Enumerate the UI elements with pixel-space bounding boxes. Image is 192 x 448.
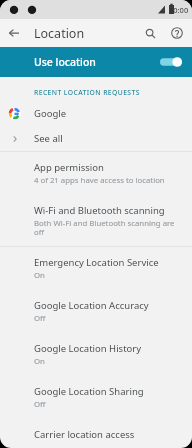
staticText: RECENT LOCATION REQUESTS xyxy=(34,88,140,97)
staticText: Emergency Location Service xyxy=(34,256,159,269)
button[interactable]: Carrier location access xyxy=(0,419,192,448)
staticText: Carrier location access xyxy=(34,428,135,439)
button[interactable]: Google Location History xyxy=(0,333,192,376)
button[interactable]: Wi-Fi and Bluetooth scanning xyxy=(0,195,192,246)
staticText: Location xyxy=(34,25,85,42)
button[interactable]: Google Location Sharing xyxy=(0,376,192,419)
button[interactable]: Search xyxy=(136,19,164,47)
staticText: Google Location History xyxy=(34,342,142,355)
button[interactable]: Google xyxy=(0,101,192,126)
button[interactable]: Back xyxy=(0,19,28,47)
staticText: Off xyxy=(34,399,46,410)
staticText: Wi-Fi and Bluetooth scanning xyxy=(34,204,165,217)
staticText: 10:00 xyxy=(169,5,189,15)
staticText: Both Wi-Fi and Bluetooth scanning are of… xyxy=(34,218,180,237)
staticText: 4 of 21 apps have access to location xyxy=(34,175,165,186)
staticText: Google Location Accuracy xyxy=(34,299,149,312)
staticText: On xyxy=(34,270,45,281)
button[interactable]: See all xyxy=(0,126,192,151)
staticText: Off xyxy=(34,313,46,324)
button[interactable]: Google Location Accuracy xyxy=(0,290,192,333)
staticText: Google Location Sharing xyxy=(34,385,144,398)
staticText: See all xyxy=(34,132,63,145)
button[interactable]: Emergency Location Service xyxy=(0,247,192,290)
button[interactable]: Help xyxy=(164,19,189,47)
staticText: Use location xyxy=(34,55,96,69)
staticText: App permission xyxy=(34,161,104,174)
staticText: Google xyxy=(34,107,67,120)
button[interactable]: App permission xyxy=(0,152,192,195)
staticText: On xyxy=(34,356,45,367)
button[interactable]: Use location xyxy=(0,47,192,77)
